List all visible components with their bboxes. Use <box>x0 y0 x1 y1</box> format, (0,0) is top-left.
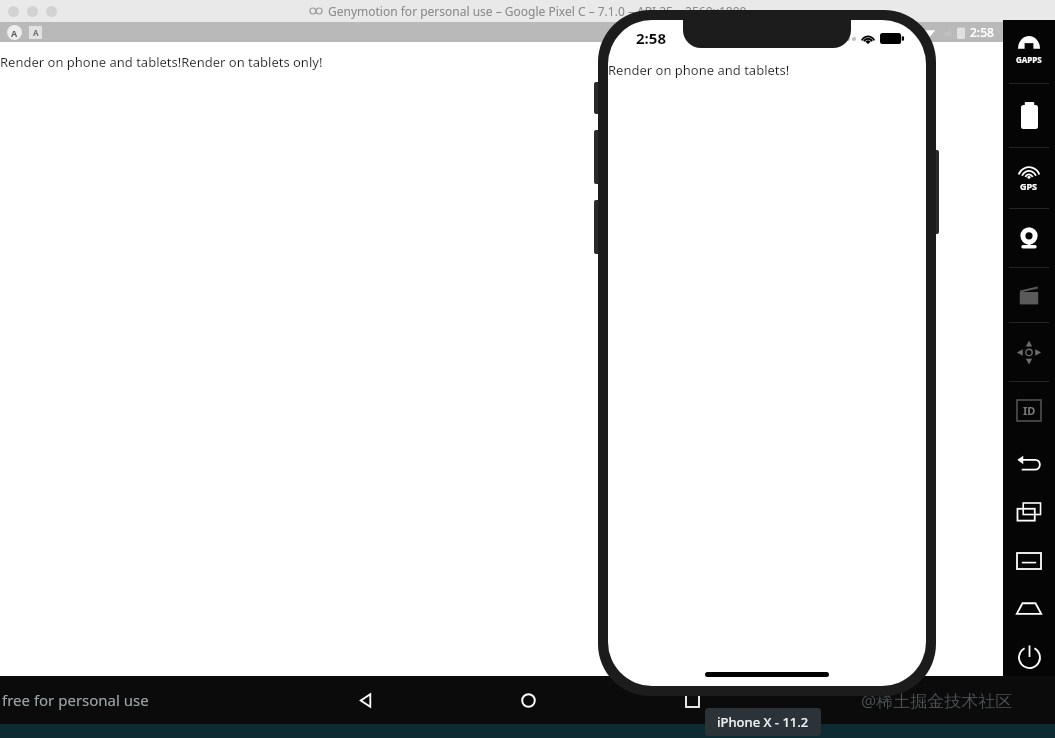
button[interactable]: iPhone X - 11.2 <box>705 708 821 736</box>
button[interactable]: Mute switch <box>594 82 600 114</box>
staticText: iPhone X - 11.2 <box>717 713 809 731</box>
button[interactable]: Camera <box>1003 225 1055 251</box>
button[interactable]: Home <box>507 679 549 721</box>
staticText: @稀土掘金技术社区 <box>861 689 1013 712</box>
staticText: ID <box>1023 403 1036 418</box>
button[interactable]: Back <box>344 679 386 721</box>
button[interactable]: GPS <box>1003 162 1055 194</box>
button[interactable]: Volume up <box>594 130 600 184</box>
staticText: A <box>11 27 18 39</box>
button[interactable]: Side button <box>933 150 939 234</box>
button[interactable]: Power <box>1003 643 1055 672</box>
staticText: free for personal use <box>2 690 149 710</box>
button[interactable]: App icon <box>7 25 22 40</box>
button[interactable]: Device ID <box>1003 398 1055 423</box>
staticText: Render on phone and tablets!Render on ta… <box>0 53 323 71</box>
staticText: Genymotion for personal use – Google Pix… <box>328 3 747 19</box>
button[interactable]: Google Apps <box>1003 34 1055 67</box>
button[interactable]: Window control <box>8 6 19 17</box>
button[interactable]: Battery <box>1003 100 1055 131</box>
staticText: 2:58 <box>636 28 666 48</box>
button[interactable]: Second app icon <box>29 26 42 39</box>
button[interactable]: Home <box>1003 599 1055 617</box>
button[interactable]: Window control <box>27 6 38 17</box>
staticText: GAPPS <box>1016 54 1042 65</box>
staticText: A <box>33 27 39 38</box>
button[interactable]: Screencast <box>1003 284 1055 308</box>
staticText: 2:58 <box>970 24 994 40</box>
button[interactable]: Back <box>1003 453 1055 473</box>
staticText: GPS <box>1020 180 1038 192</box>
button[interactable]: Window control <box>46 6 57 17</box>
staticText: Render on phone and tablets! <box>608 61 790 79</box>
button[interactable]: Menu <box>1003 551 1055 571</box>
button[interactable]: Volume down <box>594 200 600 254</box>
button[interactable]: Home indicator <box>705 672 829 677</box>
button[interactable]: Recent apps <box>1003 501 1055 523</box>
button[interactable]: Rotate / D-pad <box>1003 339 1055 365</box>
button[interactable]: Recent apps <box>671 679 713 721</box>
